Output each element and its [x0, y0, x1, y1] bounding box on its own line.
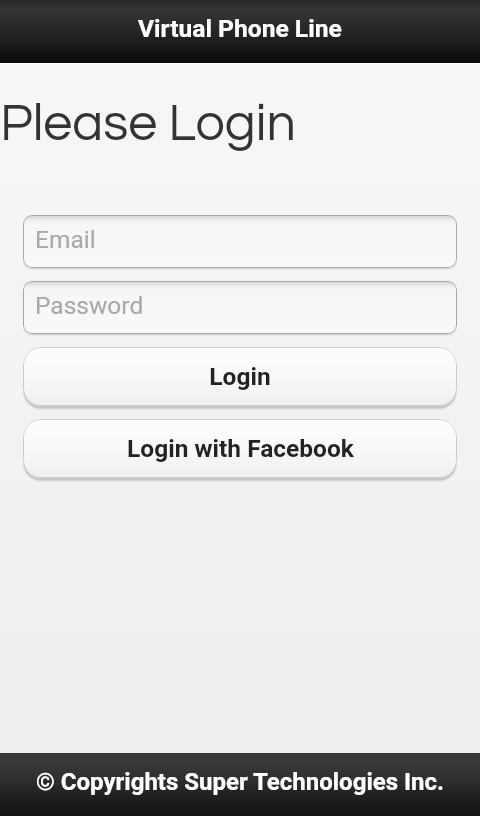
staticText: Password — [35, 291, 144, 320]
staticText: © Copyrights Super Technologies Inc. — [36, 768, 444, 796]
button[interactable]: Password — [23, 281, 457, 334]
staticText: Virtual Phone Line — [138, 14, 342, 43]
staticText: Please Login — [0, 97, 296, 151]
button[interactable]: Virtual Phone Line — [0, 0, 480, 63]
button[interactable]: © Copyrights Super Technologies Inc. — [0, 753, 480, 816]
staticText: Login — [209, 362, 271, 391]
staticText: Email — [35, 225, 96, 254]
button[interactable]: Login — [23, 347, 457, 406]
button[interactable]: Login with Facebook — [23, 419, 457, 478]
button[interactable]: Email — [23, 215, 457, 268]
staticText: Login with Facebook — [127, 434, 354, 463]
